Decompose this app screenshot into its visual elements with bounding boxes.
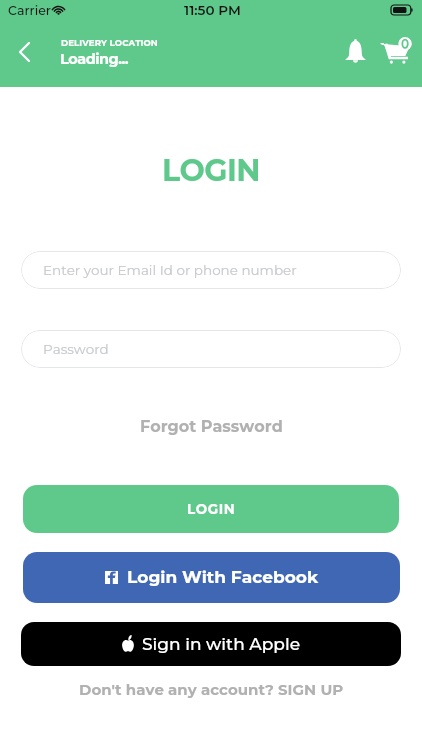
button[interactable]: LOGIN [23,485,399,533]
button[interactable]: Back [0,30,46,74]
button[interactable]: Forgot Password [0,414,422,440]
staticText: Loading... [60,50,129,68]
staticText: Login With Facebook [127,567,319,588]
button[interactable]: Cart [374,28,416,72]
button[interactable]: Sign in with Apple [21,622,401,666]
staticText: Password [43,341,109,357]
button[interactable]: Password [21,330,401,368]
button[interactable]: Don't have any account? SIGN UP [0,676,422,702]
staticText: Don't have any account? SIGN UP [79,680,344,698]
staticText: 11:50 PM [184,2,241,18]
button[interactable]: Enter your Email Id or phone number [21,251,401,289]
staticText: LOGIN [0,152,422,189]
button[interactable]: Login With Facebook [23,552,400,603]
staticText: Carrier [8,3,51,18]
staticText: LOGIN [187,501,236,517]
staticText: Forgot Password [140,417,283,437]
staticText: Sign in with Apple [142,634,301,655]
button[interactable]: Notifications [335,31,375,71]
staticText: DELIVERY LOCATION [61,38,158,48]
staticText: Enter your Email Id or phone number [43,262,297,278]
